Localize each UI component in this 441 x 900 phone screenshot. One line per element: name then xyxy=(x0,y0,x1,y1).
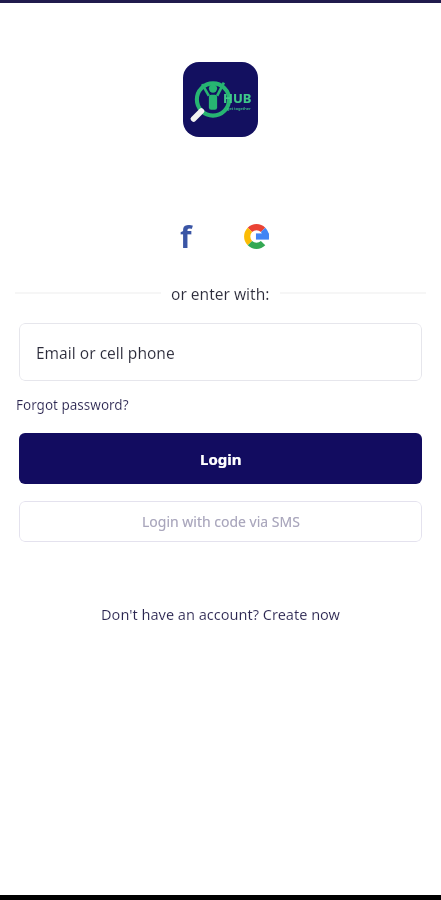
button[interactable]: Login xyxy=(19,433,422,484)
staticText: Email or cell phone xyxy=(36,342,175,363)
button[interactable]: Forgot password? xyxy=(16,393,129,417)
button[interactable]: Email or cell phone xyxy=(19,323,422,381)
staticText: or enter with: xyxy=(171,283,270,304)
staticText: Login xyxy=(200,449,242,469)
staticText: Don't have an account? Create now xyxy=(101,604,340,624)
button[interactable]: Login with code via SMS xyxy=(19,501,422,542)
button[interactable]: Don't have an account? Create now xyxy=(89,599,352,629)
staticText: Login with code via SMS xyxy=(142,512,300,531)
button[interactable]: Sign in with Google xyxy=(234,214,278,258)
button[interactable]: Sign in with Facebook xyxy=(164,214,208,258)
staticText: Forgot password? xyxy=(16,396,129,414)
staticText: get together xyxy=(227,106,251,111)
staticText: f xyxy=(180,216,192,257)
staticText: HUB xyxy=(223,89,252,107)
